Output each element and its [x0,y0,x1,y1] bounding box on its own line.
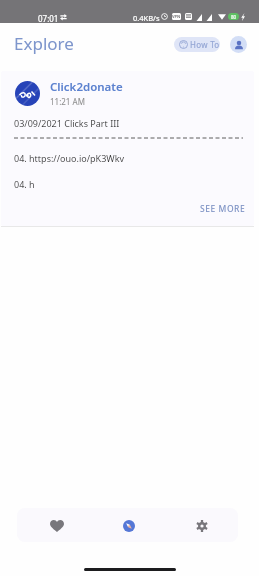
staticText: 04. h [14,178,35,190]
staticText: 0.4KB/s [133,13,160,23]
button[interactable]: Explore [112,508,146,542]
staticText: VPN [172,14,181,19]
staticText: 07:01 [38,13,59,24]
button[interactable]: Account [230,36,247,53]
button[interactable]: Settings [185,508,219,542]
staticText: 04. https://ouo.io/pK3Wkv [14,152,125,164]
button[interactable]: Favorites [40,508,74,542]
staticText: Click2donate [50,79,123,95]
button[interactable]: How To [174,37,220,52]
staticText: SEE MORE [200,203,246,215]
staticText: Explore [14,32,74,55]
staticText: How To [190,39,220,50]
staticText: 80 [231,14,237,20]
button[interactable]: Click2donate [1,71,254,226]
staticText: 11:21 AM [50,96,85,107]
button[interactable]: SEE MORE [190,201,254,217]
staticText: 03/09/2021 Clicks Part III [14,117,120,129]
